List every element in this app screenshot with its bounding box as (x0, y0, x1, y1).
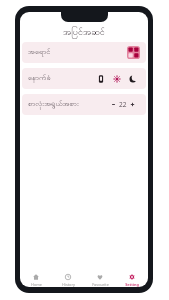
staticText: နောက်ခံ (28, 73, 51, 84)
button[interactable]: Increase font size (129, 101, 136, 108)
staticText: Home (31, 282, 42, 287)
button[interactable]: Setting (116, 274, 148, 287)
staticText: History (62, 282, 75, 287)
staticText: Setting (125, 282, 139, 287)
button[interactable]: နောက်ခံ (22, 68, 146, 89)
button[interactable]: Light theme (113, 75, 121, 83)
staticText: အရောင် (28, 47, 51, 58)
staticText: အပြင်အဆင် (63, 26, 105, 39)
button[interactable]: Decrease font size (110, 101, 117, 108)
button[interactable]: System theme (97, 75, 105, 83)
staticText: 22 (119, 100, 127, 109)
button[interactable]: Pick colour (127, 46, 140, 59)
button[interactable]: History (52, 274, 84, 287)
button[interactable]: အရောင် (22, 42, 146, 63)
button[interactable]: Home (20, 274, 52, 287)
button[interactable]: စာလုံးအရွယ်အစား (22, 94, 146, 115)
button[interactable]: Dark theme (129, 75, 137, 83)
staticText: Favourite (92, 282, 109, 287)
staticText: စာလုံးအရွယ်အစား (28, 99, 79, 110)
button[interactable]: Favourite (84, 274, 116, 287)
